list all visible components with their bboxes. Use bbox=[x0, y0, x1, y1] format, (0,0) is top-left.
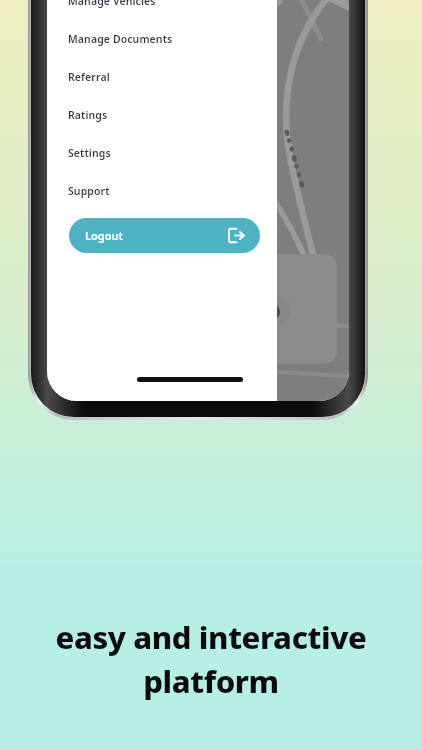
staticText: Settings bbox=[68, 146, 111, 160]
staticText: Support bbox=[68, 184, 110, 198]
staticText: Referral bbox=[68, 70, 110, 84]
button[interactable]: Settings bbox=[47, 134, 277, 172]
button[interactable]: Ratings bbox=[47, 96, 277, 134]
staticText: Manage Documents bbox=[68, 32, 173, 46]
button[interactable]: Logout bbox=[69, 218, 260, 253]
button[interactable]: Manage Documents bbox=[47, 20, 277, 58]
button[interactable]: Support bbox=[47, 172, 277, 210]
button[interactable]: Manage Vehicles bbox=[47, 0, 277, 20]
staticText: Logout bbox=[85, 228, 123, 243]
staticText: Manage Vehicles bbox=[68, 0, 156, 8]
staticText: Ratings bbox=[68, 108, 108, 122]
staticText: platform bbox=[143, 660, 279, 702]
staticText: easy and interactive bbox=[55, 616, 367, 658]
button[interactable]: Referral bbox=[47, 58, 277, 96]
